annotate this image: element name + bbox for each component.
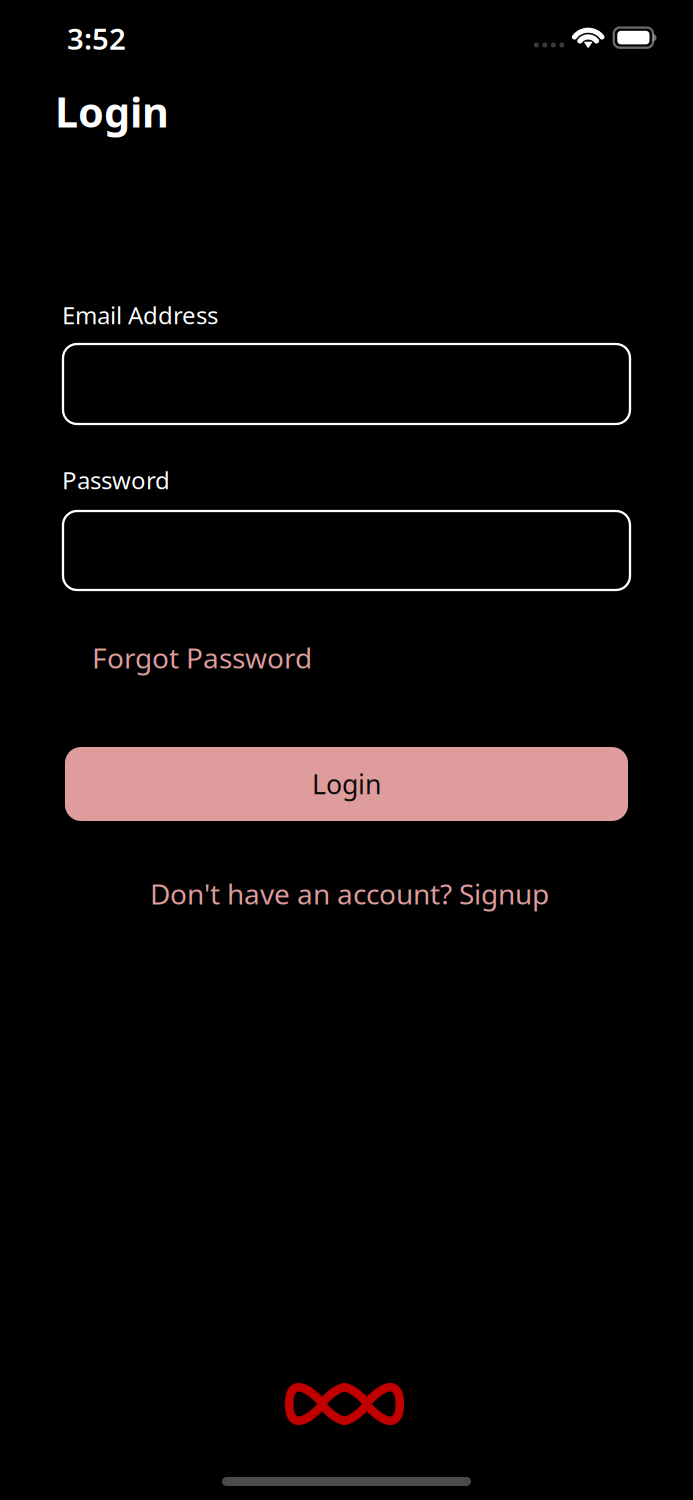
- staticText: 3:52: [67, 19, 126, 58]
- staticText: Email Address: [62, 299, 218, 331]
- button[interactable]: [63, 511, 630, 590]
- staticText: Login: [55, 84, 169, 139]
- staticText: Login: [312, 766, 381, 802]
- button[interactable]: Login: [65, 747, 628, 821]
- button[interactable]: Forgot Password: [92, 639, 312, 676]
- staticText: Password: [62, 464, 170, 496]
- button[interactable]: [63, 344, 630, 424]
- staticText: Don't have an account? Signup: [150, 875, 549, 912]
- staticText: Forgot Password: [92, 639, 312, 676]
- button[interactable]: Don't have an account? Signup: [150, 875, 549, 912]
